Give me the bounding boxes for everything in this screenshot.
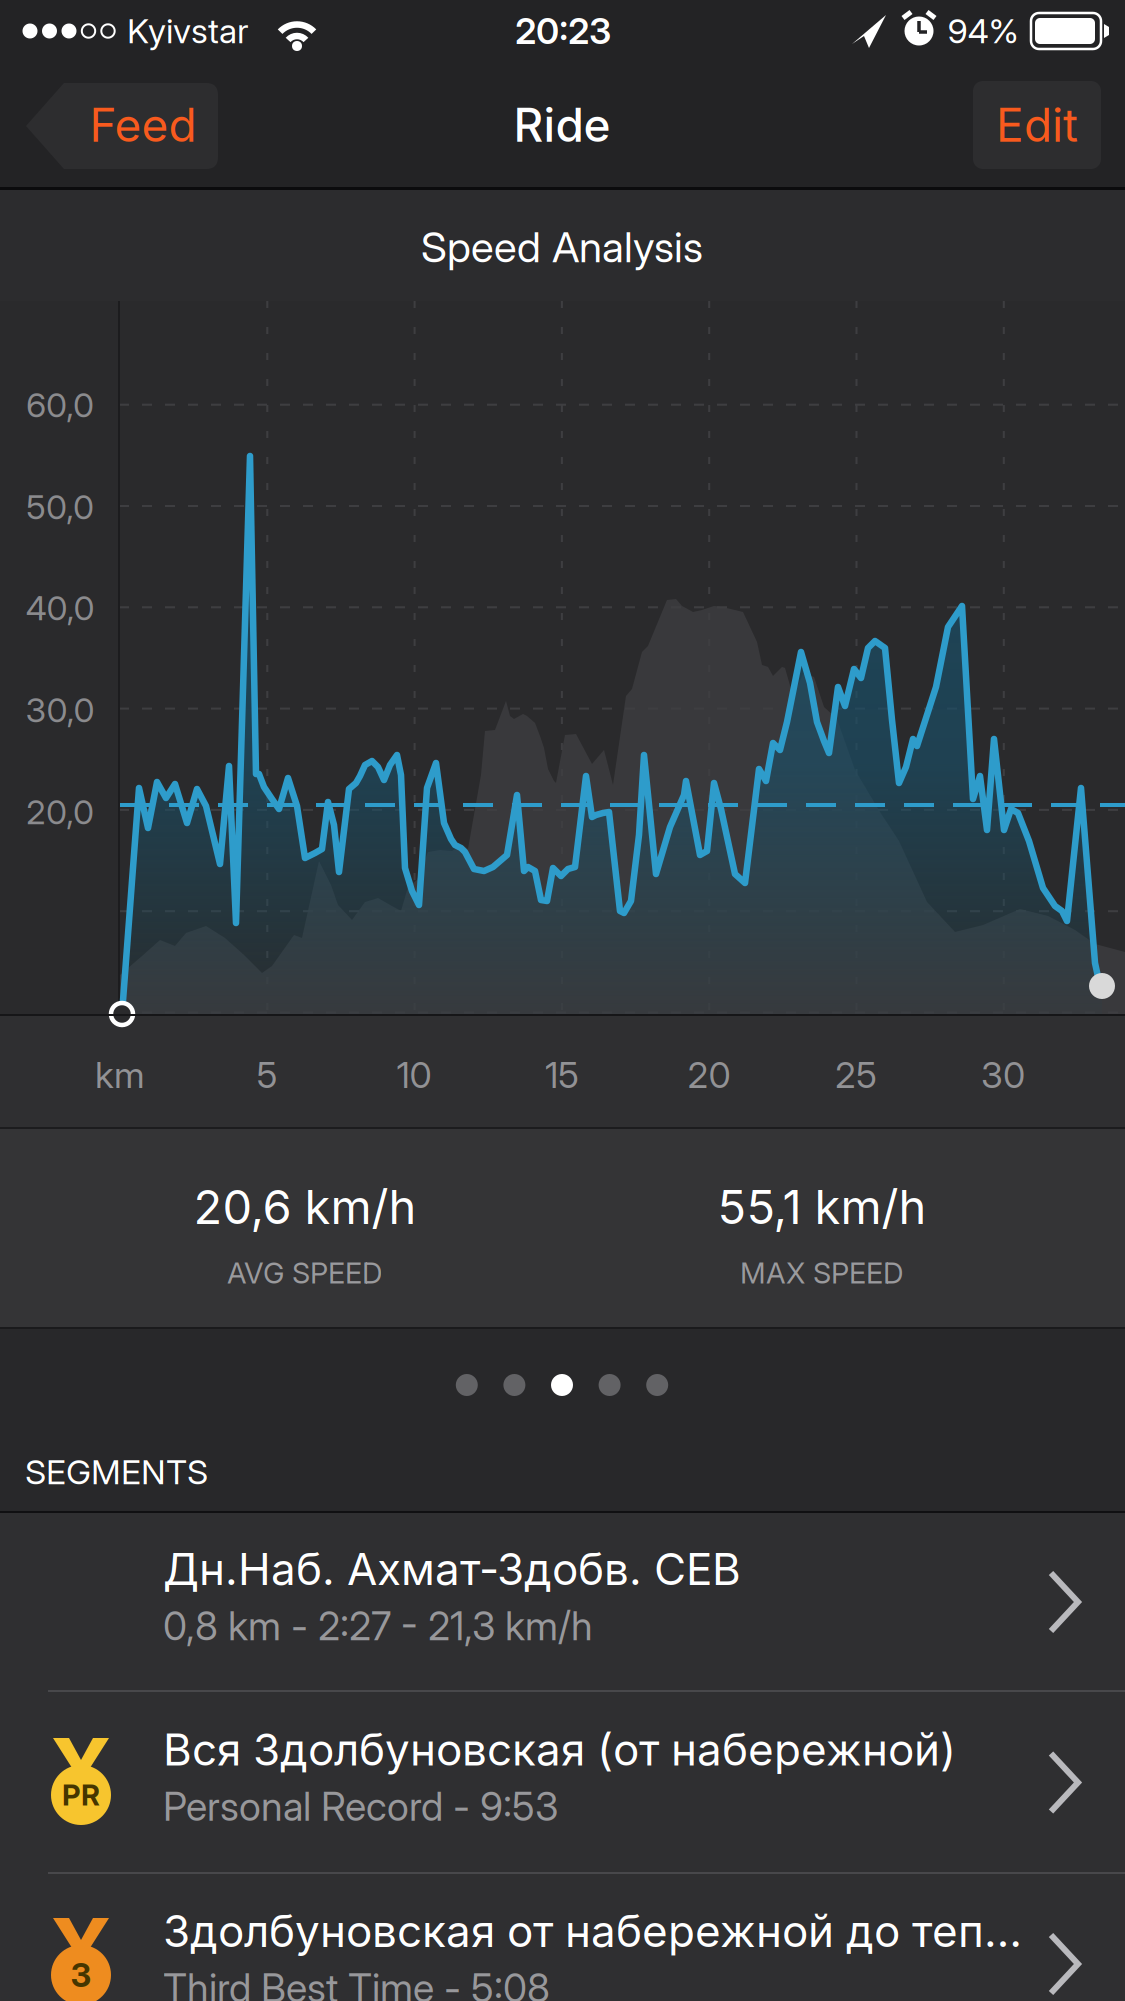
staticText: 5 <box>256 1053 277 1097</box>
staticText: 3 <box>70 1955 91 1995</box>
staticText: PR <box>62 1777 100 1813</box>
staticText: Feed <box>89 97 196 153</box>
staticText: Personal Record - 9:53 <box>163 1783 558 1830</box>
staticText: 20,0 <box>26 791 94 832</box>
staticText: 0,8 km - 2:27 - 21,3 km/h <box>163 1602 593 1650</box>
staticText: 55,1 km/h <box>717 1179 926 1235</box>
staticText: 50,0 <box>26 486 94 527</box>
staticText: 94% <box>947 10 1018 51</box>
staticText: 20 <box>687 1053 730 1097</box>
button[interactable]: Вся Здолбуновская (от набережной) <box>0 1693 1125 1872</box>
button[interactable]: Дн.Наб. Ахмат-Здобв. СЕВ <box>0 1513 1125 1691</box>
staticText: SEGMENTS <box>25 1451 208 1492</box>
staticText: 20,6 km/h <box>193 1179 416 1235</box>
staticText: 30,0 <box>25 689 94 730</box>
staticText: AVG SPEED <box>227 1255 383 1291</box>
button[interactable]: Здолбуновская от набережной до тепло… <box>0 1875 1125 2001</box>
staticText: 20:23 <box>515 9 611 53</box>
button[interactable]: Back to Feed <box>24 82 220 170</box>
staticText: MAX SPEED <box>740 1255 904 1291</box>
staticText: 30 <box>981 1053 1025 1097</box>
staticText: Ride <box>513 97 610 153</box>
staticText: km <box>95 1053 145 1097</box>
staticText: 40,0 <box>25 587 94 628</box>
staticText: Kyivstar <box>127 10 249 51</box>
button[interactable]: Edit <box>973 81 1101 169</box>
staticText: Дн.Наб. Ахмат-Здобв. СЕВ <box>163 1542 741 1596</box>
staticText: 15 <box>545 1053 579 1097</box>
staticText: Edit <box>996 97 1078 153</box>
staticText: Third Best Time - 5:08 <box>163 1964 550 2001</box>
staticText: Speed Analysis <box>421 222 703 272</box>
staticText: 10 <box>396 1053 431 1097</box>
staticText: 60,0 <box>26 384 94 425</box>
staticText: Вся Здолбуновская (от набережной) <box>163 1723 956 1776</box>
staticText: 25 <box>835 1053 877 1097</box>
staticText: Здолбуновская от набережной до тепло… <box>163 1904 1033 1958</box>
